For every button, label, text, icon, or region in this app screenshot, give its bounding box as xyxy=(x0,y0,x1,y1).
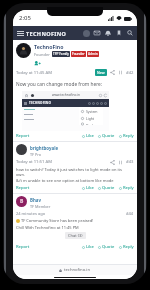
button[interactable]: Reply xyxy=(119,133,134,139)
staticText: Dark xyxy=(86,123,94,125)
button[interactable]: Inbox xyxy=(93,29,101,37)
staticText: Founder xyxy=(34,52,50,57)
button[interactable]: Share xyxy=(110,70,115,75)
button[interactable]: Chat (3) xyxy=(65,232,86,239)
button[interactable]: Quote xyxy=(98,244,115,250)
button[interactable]: TechnoFino xyxy=(34,43,64,50)
staticText: New xyxy=(97,70,105,75)
button[interactable]: Quote xyxy=(98,133,115,139)
staticText: Quote xyxy=(102,244,115,250)
staticText: Today at 11:51 AM xyxy=(16,159,52,165)
staticText: how to switch? Today it just switches to… xyxy=(16,167,122,172)
button[interactable]: Like xyxy=(82,133,94,139)
button[interactable]: Search xyxy=(126,29,134,37)
staticText: B xyxy=(20,198,24,205)
button[interactable]: brightboyale avatar xyxy=(16,144,27,155)
button[interactable]: Like xyxy=(82,185,94,191)
button[interactable]: Screenshot xyxy=(22,91,109,131)
button[interactable]: New xyxy=(95,69,107,76)
button[interactable]: TechnoFino avatar xyxy=(16,43,31,58)
button[interactable]: System xyxy=(81,109,98,114)
staticText: Reply xyxy=(123,244,134,250)
staticText: 24 minutes ago xyxy=(16,211,46,216)
staticText: Light xyxy=(86,116,95,121)
button[interactable]: Bookmark xyxy=(118,160,123,165)
staticText: TF Community Store has been praised! xyxy=(21,218,94,223)
button[interactable]: Like xyxy=(82,244,94,250)
button[interactable]: Dark xyxy=(81,123,94,125)
button[interactable]: Bhav xyxy=(30,197,41,203)
staticText: System xyxy=(86,109,98,114)
staticText: technofino.in xyxy=(64,267,91,273)
staticText: www.technofino.in xyxy=(52,93,81,97)
button[interactable]: Menu xyxy=(15,28,25,38)
button[interactable]: TFP Family xyxy=(52,51,70,57)
staticText: Chill With Technofino at 11:45 PM xyxy=(16,225,79,230)
staticText: TF Pro xyxy=(30,152,42,157)
button[interactable]: Quote xyxy=(98,185,115,191)
button[interactable]: Reply xyxy=(119,185,134,191)
button[interactable]: TECHNOFINO xyxy=(26,30,67,37)
button[interactable]: Account xyxy=(83,30,90,37)
staticText: Today at 11:45 AM xyxy=(16,70,52,76)
staticText: Like xyxy=(86,185,94,191)
staticText: TFP Family xyxy=(53,52,69,56)
staticText: TF Member xyxy=(30,204,51,209)
staticText: Quote xyxy=(102,133,115,139)
button[interactable]: Bhav avatar xyxy=(16,196,27,207)
staticText: #42 xyxy=(126,70,134,76)
staticText: 2:05 xyxy=(19,14,31,22)
button[interactable]: Share xyxy=(110,160,115,165)
staticText: Chat (3) xyxy=(68,233,83,238)
staticText: Founder xyxy=(72,52,85,56)
button[interactable]: Bookmarks xyxy=(115,29,123,37)
staticText: Reply xyxy=(123,185,134,191)
button[interactable]: brightboyale xyxy=(30,145,59,151)
staticText: own. xyxy=(16,172,26,177)
staticText: #43 xyxy=(126,159,134,165)
staticText: Now you can change mode from here: xyxy=(16,81,103,88)
button[interactable]: Alerts xyxy=(104,29,112,37)
staticText: &/t m unable to see one option at bottom… xyxy=(16,178,114,183)
button[interactable]: Admin xyxy=(87,51,99,57)
button[interactable]: Report xyxy=(16,185,30,191)
button[interactable]: Report xyxy=(16,244,30,250)
button[interactable]: Founder xyxy=(71,51,86,57)
staticText: Like xyxy=(86,244,94,250)
staticText: Admin xyxy=(88,52,98,56)
staticText: TECHNOFINO xyxy=(29,101,52,105)
staticText: Quote xyxy=(102,185,115,191)
button[interactable]: Follow xyxy=(34,60,41,67)
button[interactable]: Report xyxy=(16,133,30,139)
button[interactable]: Bookmark xyxy=(118,70,123,75)
button[interactable]: Reply xyxy=(119,244,134,250)
button[interactable]: Light xyxy=(81,116,95,121)
staticText: #44 xyxy=(126,211,134,216)
staticText: Reply xyxy=(123,133,134,139)
staticText: Like xyxy=(86,133,94,139)
